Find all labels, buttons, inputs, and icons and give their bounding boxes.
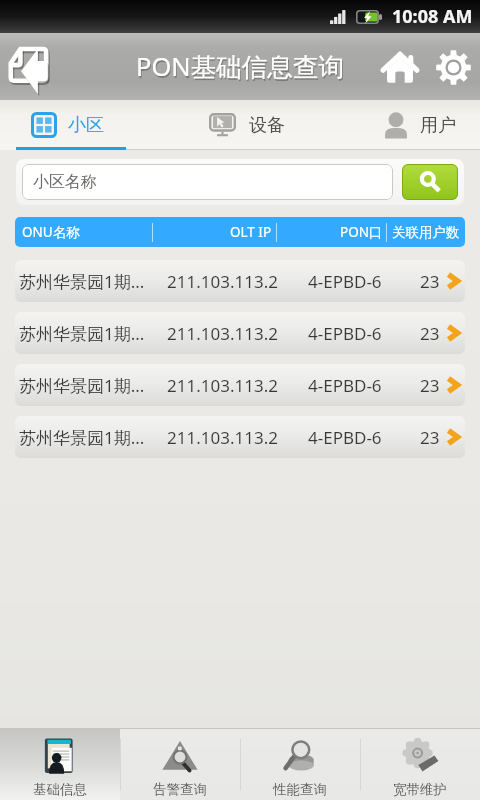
button[interactable]: 小区	[31, 100, 104, 150]
staticText: 设备	[249, 114, 285, 137]
button[interactable]: Settings	[427, 36, 480, 98]
button[interactable]: 设备	[209, 100, 285, 150]
staticText: 苏州华景园1期...	[19, 374, 145, 397]
staticText: 23	[420, 374, 440, 397]
staticText: 苏州华景园1期...	[19, 426, 145, 449]
staticText: 4-EPBD-6	[308, 426, 382, 449]
staticText: 211.103.113.2	[167, 426, 278, 449]
button[interactable]: Back	[0, 33, 62, 100]
button[interactable]: Home	[372, 36, 427, 98]
staticText: 关联用户数	[392, 224, 460, 241]
staticText: 4-EPBD-6	[308, 270, 382, 293]
staticText: PON口	[340, 223, 383, 241]
staticText: 23	[420, 270, 440, 293]
staticText: 23	[420, 426, 440, 449]
button[interactable]: 苏州华景园1期...	[15, 260, 465, 302]
staticText: 用户	[420, 114, 456, 137]
button[interactable]: 基础信息	[0, 729, 120, 800]
button[interactable]: 宽带维护	[360, 729, 480, 800]
button[interactable]: 小区名称	[22, 164, 393, 200]
staticText: 211.103.113.2	[167, 374, 278, 397]
staticText: 性能查询	[273, 781, 327, 798]
staticText: 宽带维护	[393, 781, 447, 798]
button[interactable]: 苏州华景园1期...	[15, 364, 465, 406]
button[interactable]: 性能查询	[240, 729, 360, 800]
staticText: 23	[420, 322, 440, 345]
staticText: 10:08 AM	[392, 4, 473, 29]
button[interactable]: 告警查询	[120, 729, 240, 800]
button[interactable]: 苏州华景园1期...	[15, 312, 465, 354]
staticText: 苏州华景园1期...	[19, 270, 145, 293]
button[interactable]: 用户	[382, 100, 456, 150]
button[interactable]: 苏州华景园1期...	[15, 416, 465, 458]
staticText: 小区	[68, 114, 104, 137]
staticText: 小区名称	[33, 172, 97, 192]
staticText: 告警查询	[153, 781, 207, 798]
staticText: 基础信息	[33, 781, 87, 798]
staticText: 4-EPBD-6	[308, 374, 382, 397]
staticText: PON基础信息查询	[136, 49, 344, 84]
staticText: 211.103.113.2	[167, 322, 278, 345]
staticText: 4-EPBD-6	[308, 322, 382, 345]
staticText: 苏州华景园1期...	[19, 322, 145, 345]
staticText: PON基础信息查询	[137, 51, 345, 86]
staticText: OLT IP	[230, 223, 272, 241]
staticText: ONU名称	[22, 223, 80, 241]
staticText: 211.103.113.2	[167, 270, 278, 293]
button[interactable]: Search	[402, 164, 458, 200]
